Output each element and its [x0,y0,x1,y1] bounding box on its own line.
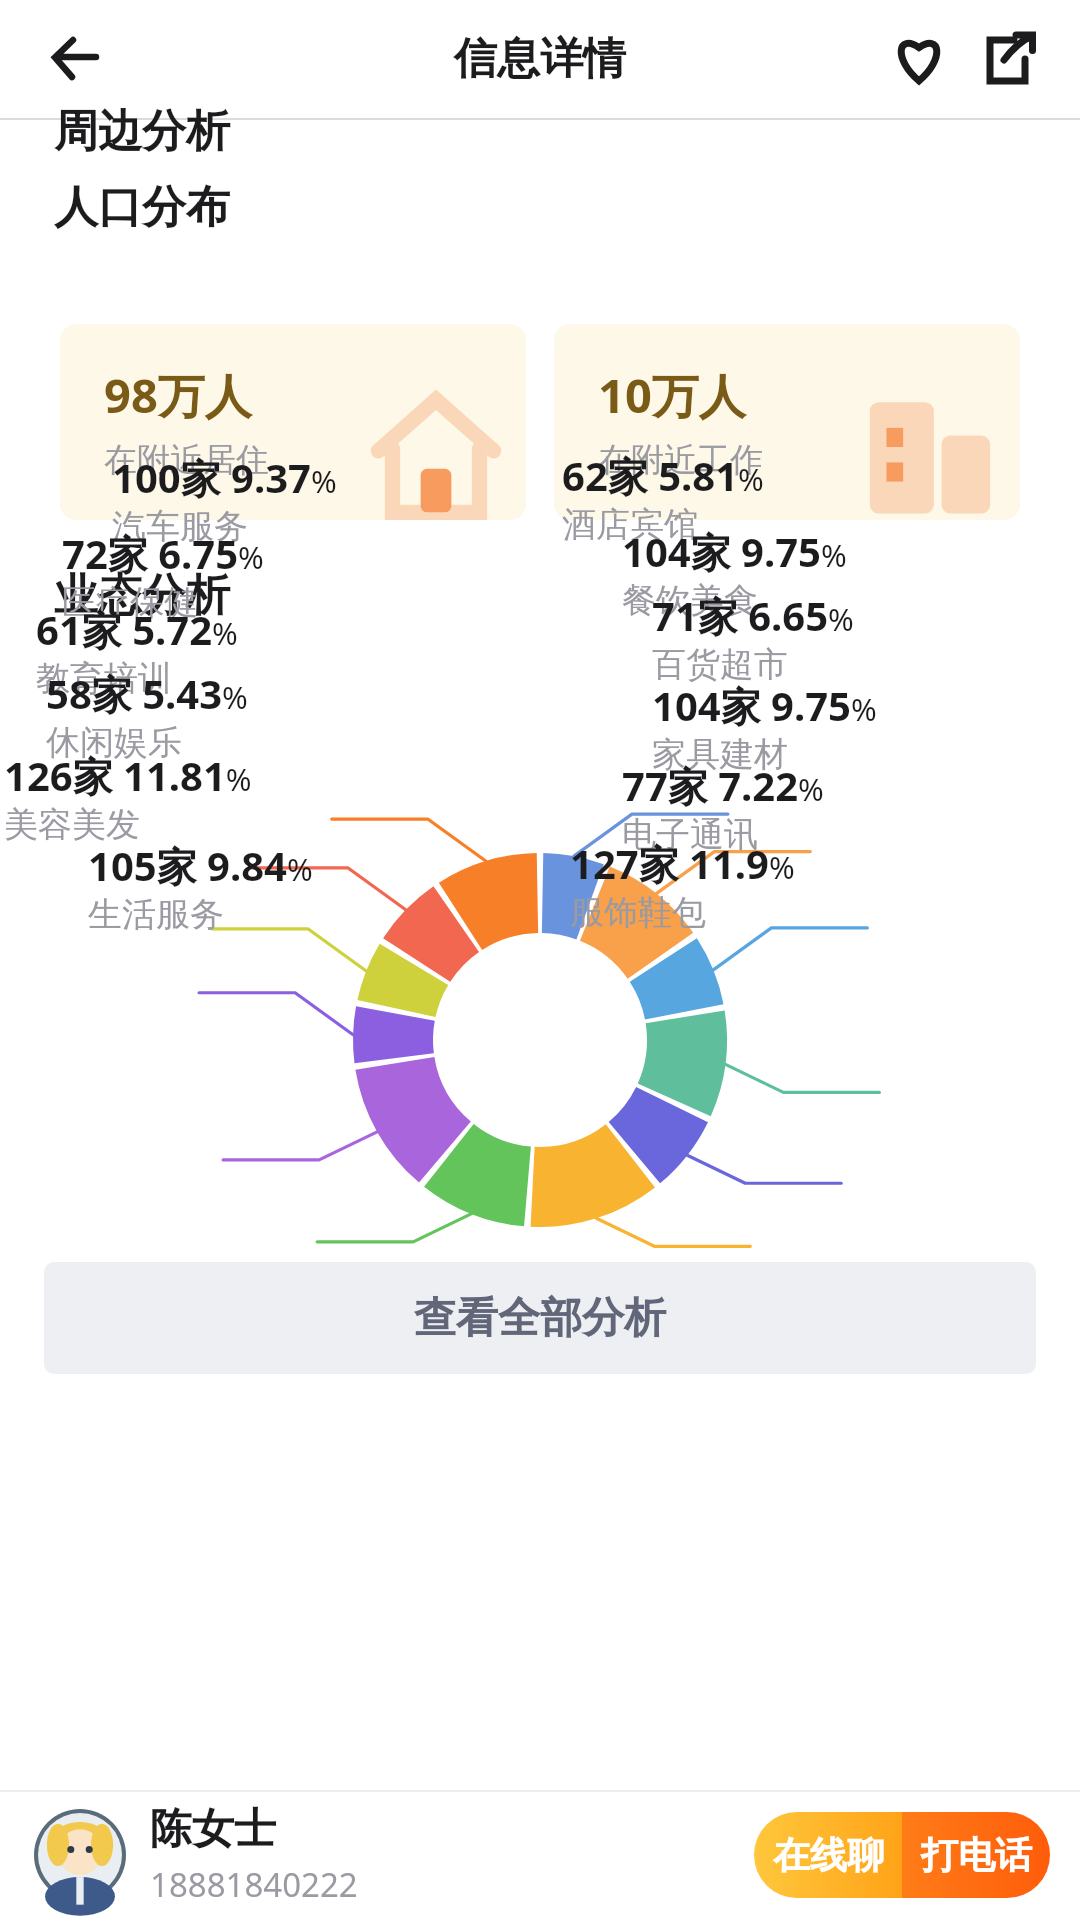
staticText: 58家 5.43% [46,666,248,721]
button[interactable]: 98万人 [60,324,526,520]
staticText: 72家 6.75% [62,526,264,581]
staticText: 人口分布 [54,180,230,235]
staticText: 126家 11.81% [4,748,252,803]
staticText: 127家 11.9% [570,836,795,891]
staticText: 98万人 [104,363,252,427]
staticText: 在线聊 [773,1832,884,1879]
staticText: 61家 5.72% [36,602,238,657]
button[interactable]: 在线聊 [754,1812,902,1898]
button[interactable]: Back [34,16,120,102]
staticText: 周边分析 [54,104,230,159]
staticText: 美容美发 [4,803,140,846]
staticText: 餐饮美食 [622,579,758,622]
staticText: 医疗保健 [62,581,198,624]
staticText: 服饰鞋包 [570,891,706,934]
staticText: 电子通讯 [622,813,758,856]
staticText: 71家 6.65% [652,588,854,643]
staticText: 业态分析 [54,568,230,623]
button[interactable]: Share [964,14,1054,104]
staticText: 休闲娱乐 [46,721,182,764]
staticText: 104家 9.75% [652,678,877,733]
staticText: 100家 9.37% [112,450,337,505]
staticText: 10万人 [598,363,746,427]
staticText: 生活服务 [88,893,224,936]
staticText: 汽车服务 [112,505,248,548]
staticText: 百货超市 [652,643,788,686]
staticText: 酒店宾馆 [562,503,698,546]
button[interactable]: 打电话 [902,1812,1050,1898]
staticText: 教育培训 [36,657,172,700]
staticText: 104家 9.75% [622,524,847,579]
staticText: 77家 7.22% [622,758,824,813]
button[interactable]: Favorite [874,14,964,104]
staticText: 家具建材 [652,733,788,776]
staticText: 信息详情 [454,32,626,86]
button[interactable]: 10万人 [554,324,1020,520]
staticText: 查看全部分析 [414,1292,666,1345]
button[interactable]: 查看全部分析 [44,1262,1036,1374]
staticText: 62家 5.81% [562,448,764,503]
staticText: 105家 9.84% [88,838,313,893]
staticText: 打电话 [921,1832,1032,1879]
staticText: 在附近居住 [104,439,269,481]
staticText: 陈女士 [150,1803,276,1856]
staticText: 18881840222 [150,1862,358,1907]
staticText: 在附近工作 [598,439,763,481]
